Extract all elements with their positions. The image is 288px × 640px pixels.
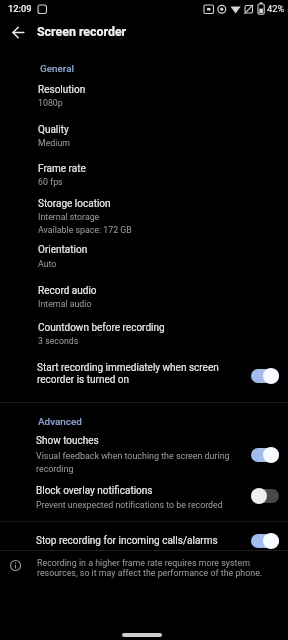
button[interactable]: Quality — [0, 122, 288, 160]
staticText: 60 fps — [38, 177, 63, 187]
staticText: Available space: 172 GB — [38, 225, 132, 235]
staticText: 3 seconds — [38, 336, 79, 346]
staticText: Record audio — [38, 285, 97, 297]
button[interactable]: Show touches — [0, 433, 288, 481]
staticText: Orientation — [38, 244, 88, 256]
button[interactable]: Stop recording for incoming calls/alarms — [0, 530, 288, 554]
button[interactable] — [251, 446, 279, 464]
staticText: Resolution — [38, 84, 86, 96]
button[interactable]: Frame rate — [0, 161, 288, 198]
staticText: Auto — [38, 259, 57, 269]
button[interactable]: Record audio — [0, 283, 288, 320]
staticText: 1080p — [38, 98, 63, 108]
staticText: Frame rate — [38, 163, 86, 175]
staticText: Block overlay notifications — [36, 485, 153, 497]
button[interactable]: Countdown before recording — [0, 320, 288, 358]
staticText: Medium — [38, 138, 71, 148]
staticText: Countdown before recording — [38, 322, 165, 334]
staticText: Start recording immediately when screen … — [37, 362, 219, 386]
staticText: Visual feedback when touching the screen… — [36, 451, 230, 474]
button[interactable] — [251, 487, 279, 505]
staticText: 42% — [267, 3, 285, 14]
staticText: Advanced — [38, 416, 82, 428]
staticText: Recording in a higher frame rate require… — [37, 558, 263, 578]
staticText: General — [40, 63, 75, 75]
staticText: Prevent unexpected notifications to be r… — [36, 500, 223, 510]
button[interactable]: Block overlay notifications — [0, 483, 288, 521]
staticText: Quality — [38, 124, 69, 136]
button[interactable] — [6, 22, 32, 44]
button[interactable]: Orientation — [0, 242, 288, 281]
staticText: Internal storage — [38, 212, 100, 222]
button[interactable]: Start recording immediately when screen … — [0, 358, 288, 394]
staticText: Internal audio — [38, 299, 92, 309]
button[interactable] — [251, 532, 279, 550]
button[interactable] — [251, 367, 279, 385]
staticText: 12:09 — [8, 3, 32, 14]
staticText: Stop recording for incoming calls/alarms — [36, 535, 218, 547]
button[interactable]: Storage location — [0, 196, 288, 244]
staticText: Screen recorder — [37, 24, 127, 39]
staticText: Show touches — [36, 435, 99, 447]
button[interactable]: Resolution — [0, 82, 288, 121]
staticText: Storage location — [38, 198, 111, 210]
